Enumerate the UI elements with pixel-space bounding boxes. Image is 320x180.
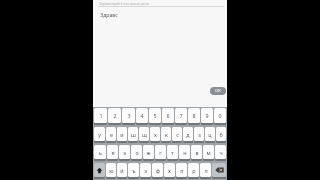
button[interactable]: Send [210, 87, 226, 95]
staticText: ч [219, 149, 223, 156]
button[interactable]: в [191, 145, 202, 159]
button[interactable]: т [167, 145, 178, 159]
staticText: ь [99, 149, 102, 156]
staticText: 4 [140, 112, 144, 119]
staticText: щ [142, 131, 147, 138]
button[interactable]: е [106, 127, 116, 141]
button[interactable]: ь [94, 145, 106, 159]
staticText: х [168, 167, 171, 174]
button[interactable]: ф [152, 163, 163, 177]
button[interactable]: н [179, 145, 190, 159]
staticText: о [135, 149, 139, 156]
button[interactable]: х [164, 163, 175, 177]
staticText: ш [131, 131, 136, 138]
staticText: и [120, 131, 124, 138]
staticText: з [198, 131, 201, 138]
staticText: 7 [179, 112, 183, 119]
button[interactable]: г [155, 145, 166, 159]
staticText: д [186, 131, 190, 138]
button[interactable]: Backspace [212, 163, 226, 177]
staticText: т [171, 149, 174, 156]
staticText: 9 [205, 112, 209, 119]
staticText: у [98, 131, 101, 138]
button[interactable]: к [161, 127, 171, 141]
staticText: 3 [127, 112, 131, 119]
staticText: 0 [218, 112, 222, 119]
staticText: я [111, 149, 115, 156]
button[interactable]: 8 [188, 108, 200, 123]
button[interactable]: 5 [149, 108, 161, 123]
staticText: Здравс [100, 11, 118, 18]
button[interactable]: 1 [94, 108, 107, 123]
staticText: с [176, 131, 179, 138]
staticText: п [180, 167, 184, 174]
staticText: р [192, 167, 196, 174]
button[interactable]: э [119, 145, 130, 159]
button[interactable]: и [117, 127, 127, 141]
button[interactable]: 0 [214, 108, 226, 123]
button[interactable]: у [94, 127, 105, 141]
button[interactable]: Shift [94, 163, 105, 177]
button[interactable]: я [107, 145, 118, 159]
button[interactable]: ш [128, 127, 138, 141]
button[interactable]: ч [215, 145, 226, 159]
staticText: 6 [166, 112, 170, 119]
button[interactable]: д [183, 127, 193, 141]
button[interactable]: ъ [128, 163, 139, 177]
button[interactable]: б [216, 127, 226, 141]
staticText: к [165, 131, 168, 138]
button[interactable]: 6 [162, 108, 174, 123]
button[interactable]: п [176, 163, 187, 177]
button[interactable]: х [150, 127, 160, 141]
button[interactable]: э [140, 163, 151, 177]
staticText: 8 [192, 112, 196, 119]
staticText: н [183, 149, 187, 156]
staticText: х [154, 131, 157, 138]
staticText: ц [208, 131, 212, 138]
button[interactable]: Здравствуйте как ваши дела [93, 1, 227, 6]
staticText: в [195, 149, 199, 156]
button[interactable]: щ [139, 127, 149, 141]
button[interactable]: з [194, 127, 204, 141]
button[interactable]: й [117, 163, 127, 177]
button[interactable]: Здравс [93, 10, 227, 19]
button[interactable]: с [172, 127, 182, 141]
button[interactable]: р [188, 163, 199, 177]
staticText: ю [109, 167, 114, 174]
button[interactable]: 7 [175, 108, 187, 123]
button[interactable]: 4 [136, 108, 148, 123]
staticText: Здравствуйте как ваши дела [99, 1, 149, 6]
staticText: 5 [153, 112, 157, 119]
staticText: м [206, 149, 211, 156]
staticText: 2 [113, 112, 117, 119]
staticText: ОК [215, 88, 221, 94]
staticText: е [110, 131, 113, 138]
staticText: г [159, 149, 162, 156]
button[interactable]: ю [106, 163, 116, 177]
staticText: 1 [99, 112, 103, 119]
button[interactable]: 3 [122, 108, 135, 123]
staticText: б [219, 131, 223, 138]
staticText: ж [146, 149, 151, 156]
button[interactable]: ж [143, 145, 154, 159]
staticText: э [123, 149, 126, 156]
staticText: э [144, 167, 147, 174]
button[interactable]: м [203, 145, 214, 159]
staticText: ъ [132, 167, 136, 174]
button[interactable]: 2 [108, 108, 121, 123]
staticText: й [120, 167, 124, 174]
staticText: л [204, 167, 208, 174]
button[interactable]: л [200, 163, 211, 177]
staticText: ф [156, 167, 160, 174]
button[interactable]: 9 [201, 108, 213, 123]
button[interactable]: ц [205, 127, 215, 141]
button[interactable]: о [131, 145, 142, 159]
